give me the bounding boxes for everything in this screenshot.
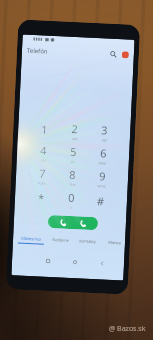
staticText: 5 <box>70 144 78 159</box>
button[interactable]: Account <box>120 49 131 61</box>
button[interactable]: 0 <box>55 187 87 212</box>
staticText: WXYZ <box>98 184 106 189</box>
button[interactable]: 3 <box>89 120 120 144</box>
button[interactable]: Recents <box>42 255 54 267</box>
button[interactable]: 4 <box>28 140 59 164</box>
staticText: 8 <box>69 167 76 182</box>
button[interactable]: 2 <box>59 118 90 143</box>
staticText: TUV <box>70 183 76 187</box>
staticText: 2 <box>85 219 88 224</box>
button[interactable]: 5 <box>58 141 89 166</box>
button[interactable]: 6 <box>88 143 119 167</box>
staticText: * <box>38 190 45 206</box>
staticText: 3 <box>101 122 109 138</box>
button[interactable]: Miesta <box>101 239 125 249</box>
button[interactable]: Nedávne <box>47 237 74 247</box>
staticText: # <box>97 193 105 209</box>
staticText: Nedávne <box>52 237 69 243</box>
staticText: ABC <box>72 137 78 141</box>
button[interactable]: Back <box>96 257 108 270</box>
button[interactable]: * <box>25 186 57 210</box>
staticText: 7 <box>39 165 47 181</box>
staticText: + <box>70 206 73 210</box>
button[interactable]: 7 <box>27 163 58 187</box>
staticText: JKL <box>71 160 76 164</box>
staticText: 1 <box>41 121 49 137</box>
button[interactable]: 9 <box>86 166 118 190</box>
button[interactable]: Kontakty <box>74 238 101 248</box>
button[interactable]: Call <box>48 215 98 230</box>
staticText: 6 <box>100 145 108 161</box>
staticText: Klávesnica <box>21 236 41 241</box>
staticText: PQRS <box>38 181 46 186</box>
button[interactable]: 8 <box>57 164 88 189</box>
staticText: 0 <box>68 190 75 205</box>
staticText: MNO <box>99 161 107 166</box>
button[interactable]: Search <box>108 48 119 60</box>
staticText: 4 <box>40 142 48 158</box>
staticText: Miesta <box>108 240 121 245</box>
staticText: DEF <box>102 138 108 143</box>
button[interactable]: # <box>85 189 116 213</box>
staticText: 2 <box>71 121 79 136</box>
staticText: GHI <box>41 158 47 163</box>
staticText: Telefón <box>27 47 48 56</box>
staticText: 9 <box>99 168 106 184</box>
staticText: 1 <box>65 218 68 223</box>
button[interactable]: Home <box>69 256 81 268</box>
button[interactable]: Klávesnica <box>15 235 47 246</box>
staticText: Kontakty <box>79 238 96 244</box>
staticText: @ Bazos.sk <box>109 324 146 334</box>
button[interactable]: 1 <box>29 117 60 141</box>
